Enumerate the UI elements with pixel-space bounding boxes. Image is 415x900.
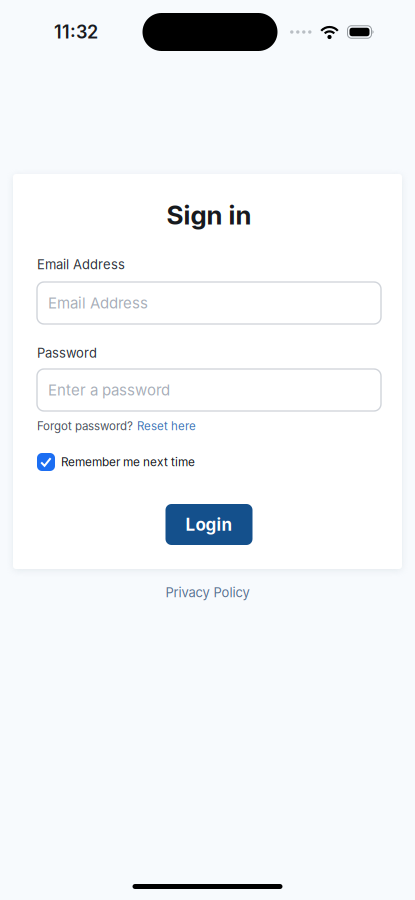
staticText: Email Address [37, 257, 125, 272]
staticText: Login [185, 514, 232, 535]
staticText: Email Address [48, 294, 148, 312]
staticText: Forgot password? [37, 419, 133, 433]
staticText: Remember me next time [61, 455, 195, 469]
staticText: Enter a password [48, 381, 170, 399]
staticText: Privacy Policy [165, 585, 249, 600]
staticText: Password [37, 345, 97, 361]
staticText: Reset here [137, 419, 196, 433]
staticText: Sign in [166, 199, 251, 231]
staticText: 11:32 [54, 21, 98, 43]
